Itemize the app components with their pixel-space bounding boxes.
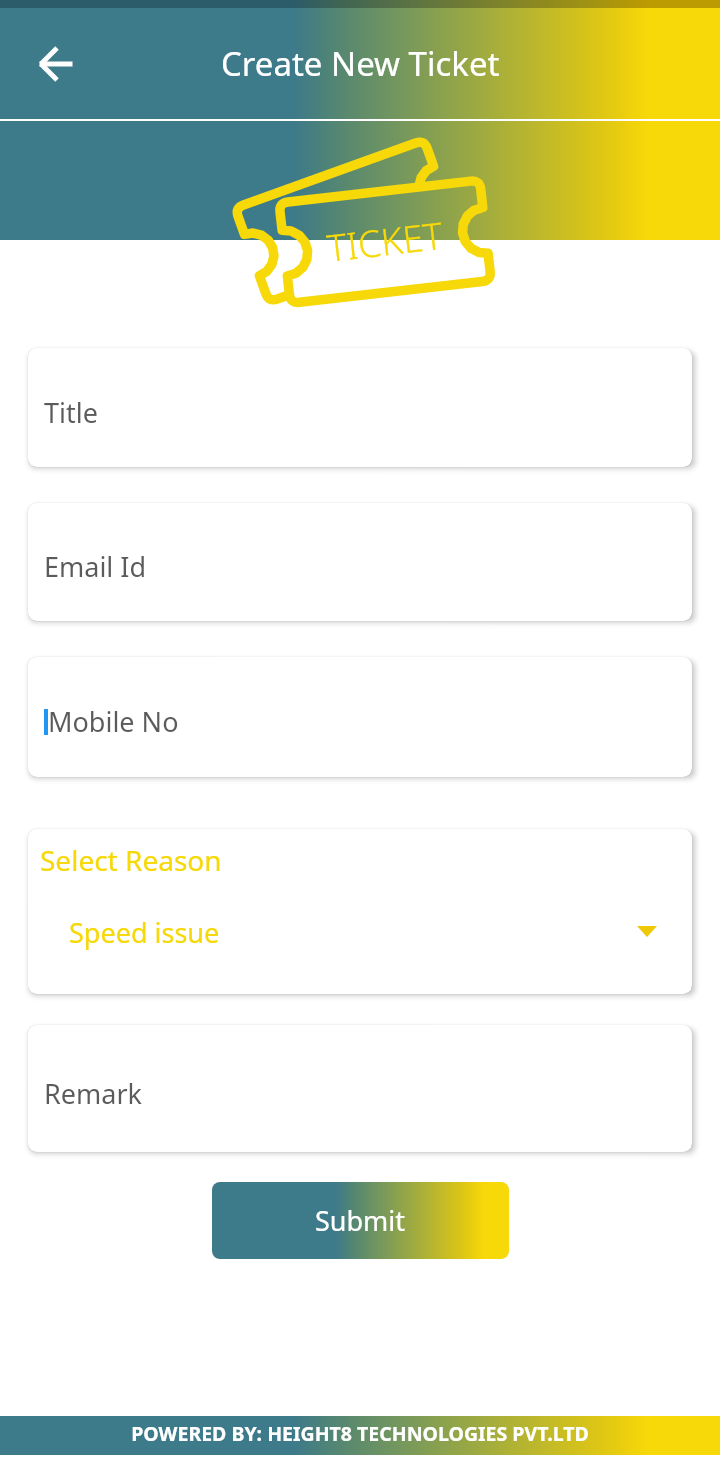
staticText: TICKET: [324, 209, 445, 272]
staticText: Email Id: [44, 548, 147, 585]
staticText: POWERED BY: HEIGHT8 TECHNOLOGIES PVT.LTD: [131, 1420, 589, 1447]
staticText: Select Reason: [40, 841, 222, 879]
staticText: Submit: [315, 1202, 406, 1239]
staticText: Remark: [44, 1075, 142, 1112]
button[interactable]: Back: [28, 36, 84, 92]
button[interactable]: Submit: [212, 1182, 509, 1259]
button[interactable]: Email Id: [28, 503, 692, 621]
staticText: Mobile No: [48, 703, 179, 740]
button[interactable]: Title: [28, 348, 692, 467]
button[interactable]: Remark: [28, 1025, 692, 1152]
button[interactable]: Mobile No: [28, 657, 692, 777]
staticText: Title: [44, 394, 98, 431]
staticText: Create New Ticket: [221, 41, 500, 86]
button[interactable]: Select Reason: [28, 829, 692, 994]
staticText: Speed issue: [69, 914, 220, 951]
button[interactable]: POWERED BY: HEIGHT8 TECHNOLOGIES PVT.LTD: [0, 1416, 720, 1455]
